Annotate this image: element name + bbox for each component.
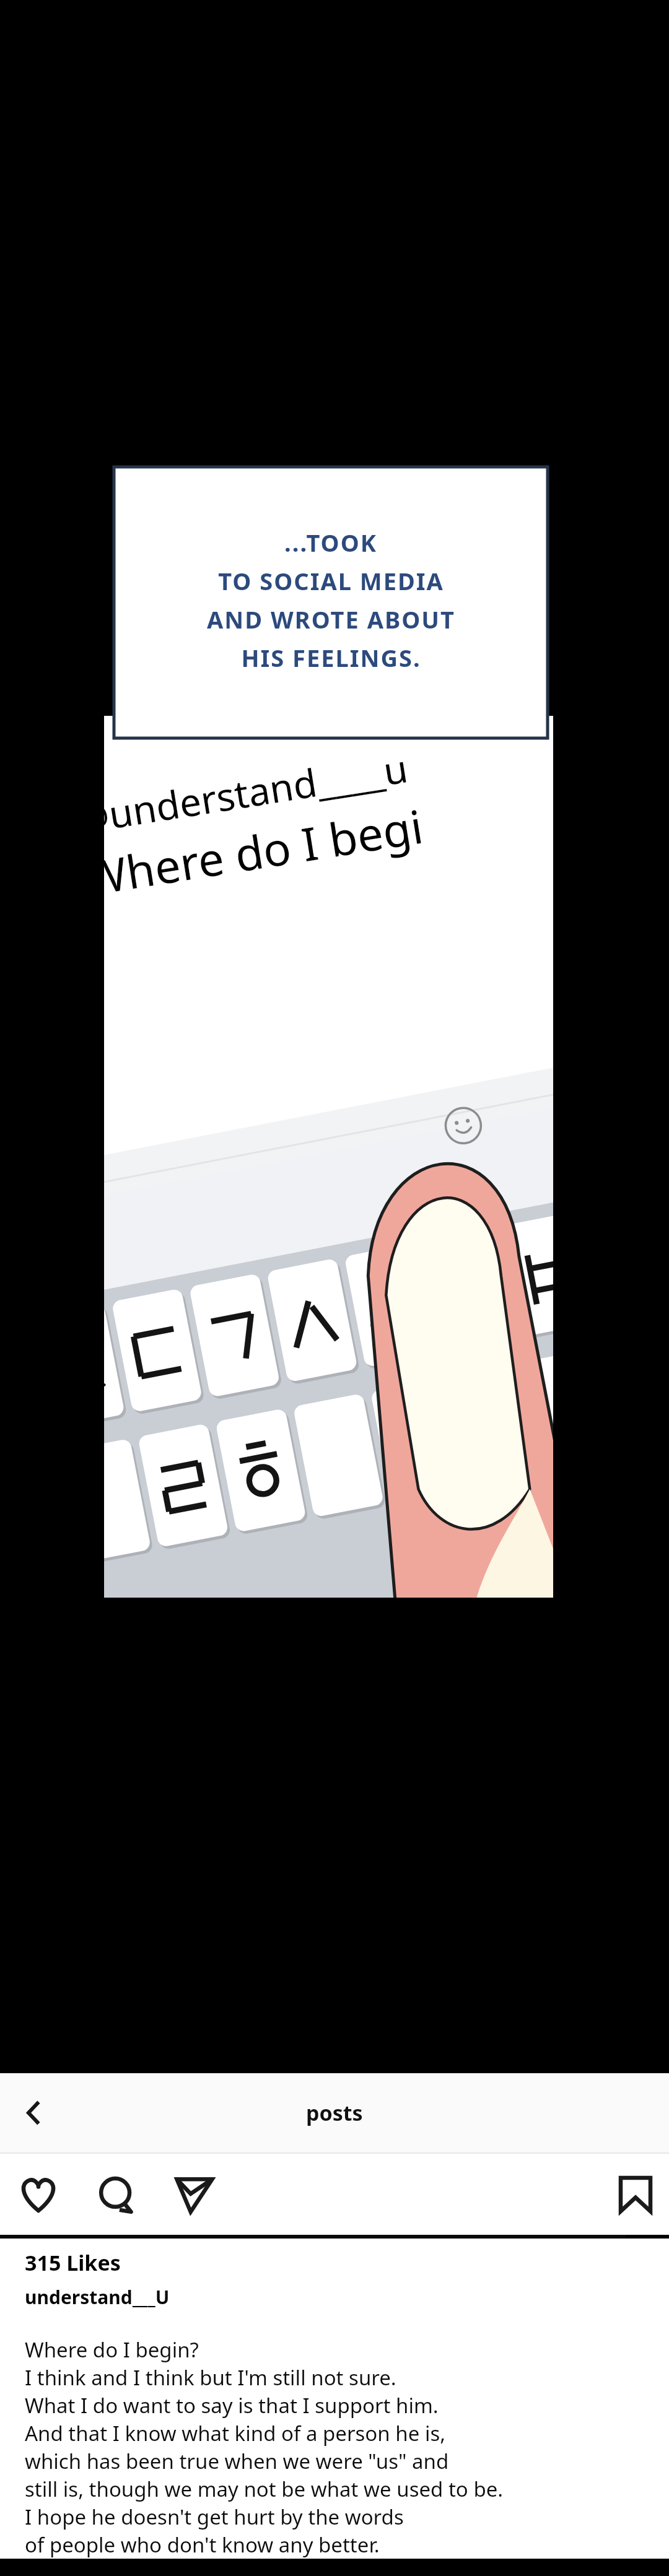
staticText: 315 Likes xyxy=(25,2248,121,2277)
staticText: HIS FEELINGS. xyxy=(241,642,421,674)
staticText: understand___U xyxy=(25,2284,170,2310)
staticText: Where do I begi xyxy=(79,794,428,910)
staticText: AND WROTE ABOUT xyxy=(207,603,455,635)
button[interactable]: Back xyxy=(11,2091,56,2135)
staticText: posts xyxy=(306,2099,363,2127)
staticText: @understand____u xyxy=(71,741,411,845)
button[interactable]: Like xyxy=(12,2169,64,2221)
button[interactable]: Share xyxy=(168,2169,221,2221)
staticText: Where do I begin? I think and I think bu… xyxy=(25,2336,504,2559)
button[interactable]: Save xyxy=(611,2170,660,2219)
staticText: ...TOOK xyxy=(284,526,377,559)
staticText: TO SOCIAL MEDIA xyxy=(218,565,444,597)
button[interactable]: Comment xyxy=(90,2169,142,2221)
